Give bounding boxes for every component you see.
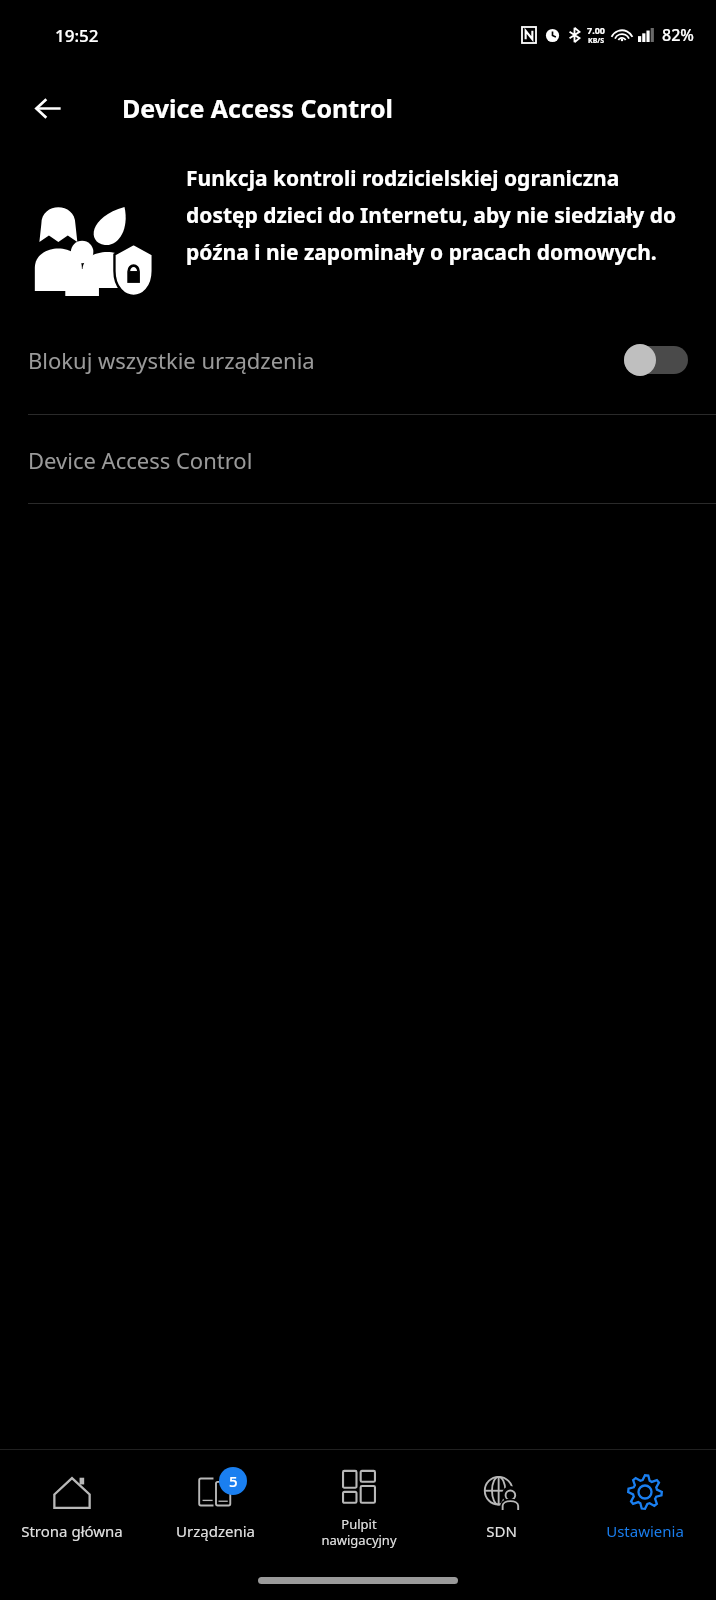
staticText: Strona główna	[21, 1521, 123, 1541]
staticText: 5	[229, 1471, 238, 1491]
button[interactable]: Pulpit nawigacyjny	[287, 1450, 430, 1560]
button[interactable]: Strona główna	[0, 1450, 144, 1560]
button[interactable]: 5	[144, 1450, 287, 1560]
staticText: Urządzenia	[176, 1521, 255, 1541]
button[interactable]: Back	[22, 82, 74, 134]
staticText: 7.00	[587, 24, 605, 36]
staticText: Pulpit nawigacyjny	[321, 1515, 397, 1548]
staticText: 19:52	[55, 24, 99, 47]
staticText: KB/S	[588, 36, 605, 46]
staticText: 82%	[662, 24, 694, 46]
staticText: Funkcja kontroli rodzicielskiej ogranicz…	[186, 164, 690, 266]
button[interactable]: Blokuj wszystkie urządzenia	[0, 330, 716, 390]
staticText: Ustawienia	[606, 1521, 684, 1541]
button[interactable]: SDN	[430, 1450, 573, 1560]
button[interactable]: Ustawienia	[573, 1450, 716, 1560]
staticText: Blokuj wszystkie urządzenia	[28, 345, 315, 375]
staticText: SDN	[486, 1521, 517, 1541]
staticText: Device Access Control	[122, 91, 393, 125]
button[interactable]: Device Access Control	[0, 445, 716, 475]
staticText: Device Access Control	[28, 445, 253, 475]
